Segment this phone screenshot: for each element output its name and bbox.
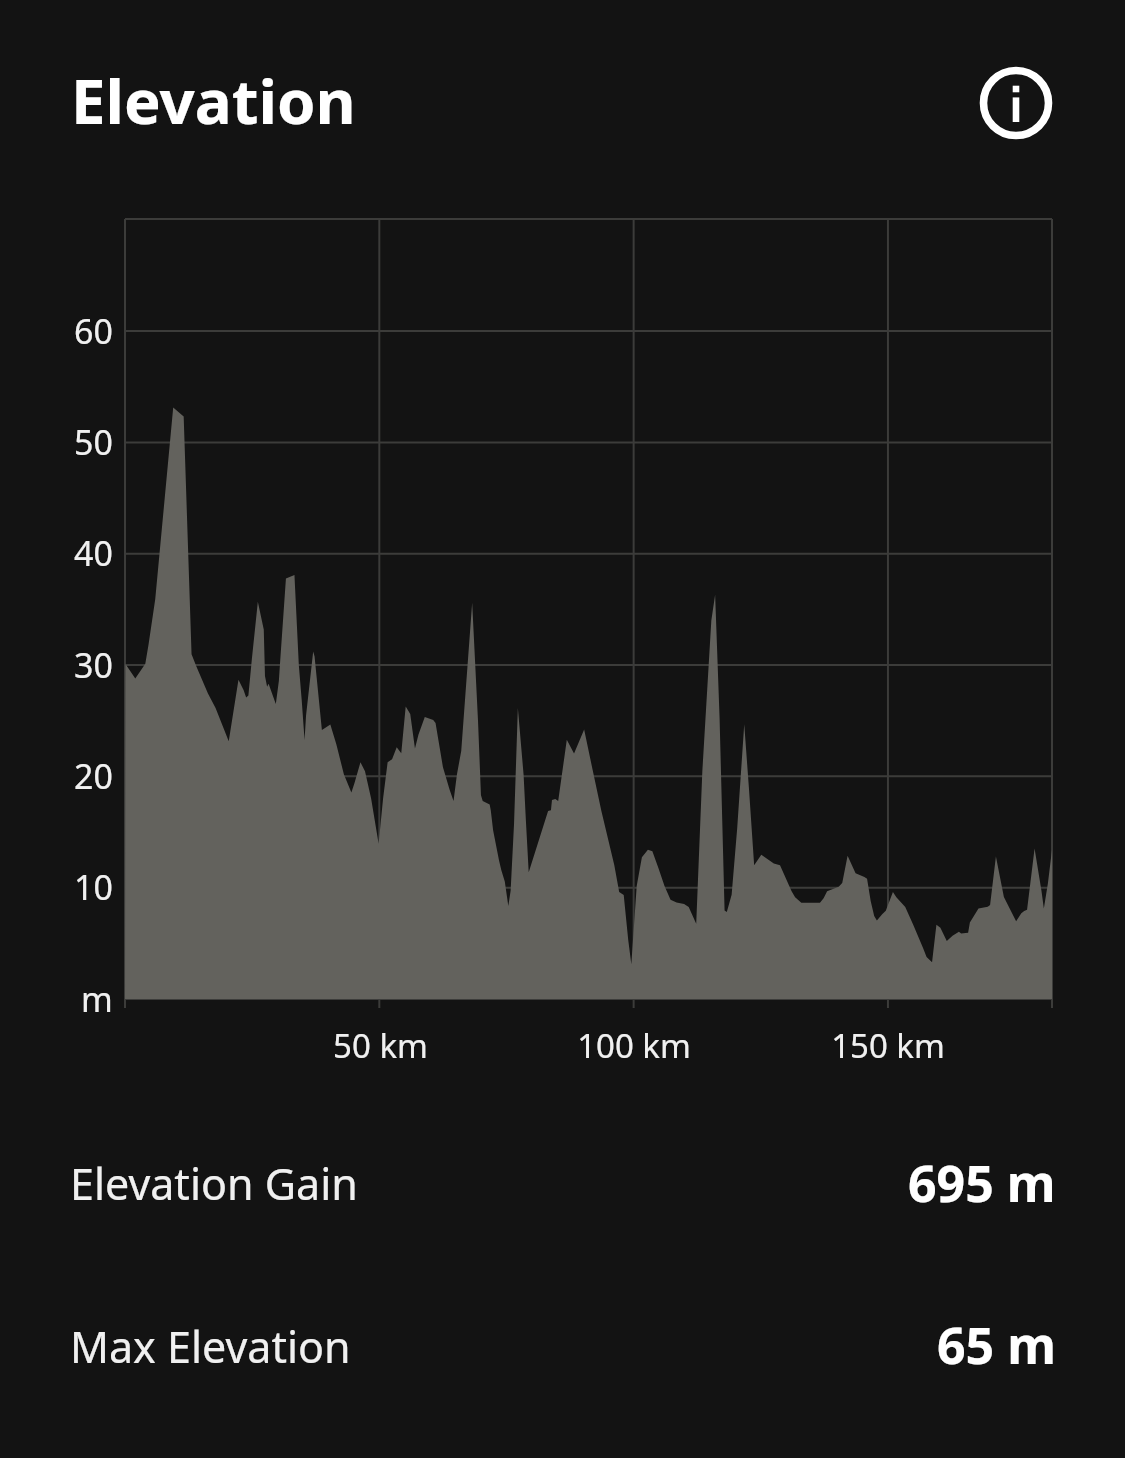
button[interactable]: Info: [972, 59, 1060, 147]
staticText: Max Elevation: [70, 1317, 351, 1376]
staticText: 10: [74, 864, 113, 910]
staticText: 50: [74, 419, 113, 465]
staticText: 40: [74, 530, 113, 576]
staticText: 65 m: [937, 1311, 1056, 1379]
button[interactable]: Max Elevation: [0, 1284, 1125, 1399]
staticText: 60: [74, 308, 113, 354]
staticText: 695 m: [908, 1149, 1056, 1217]
button[interactable]: Elevation Gain: [0, 1121, 1125, 1236]
staticText: 30: [74, 642, 113, 688]
staticText: Elevation Gain: [70, 1154, 358, 1213]
staticText: 100 km: [577, 1023, 691, 1068]
staticText: 20: [74, 753, 113, 799]
staticText: 50 km: [333, 1023, 428, 1068]
staticText: m: [81, 976, 113, 1022]
staticText: Elevation: [71, 58, 356, 142]
staticText: 150 km: [831, 1023, 945, 1068]
